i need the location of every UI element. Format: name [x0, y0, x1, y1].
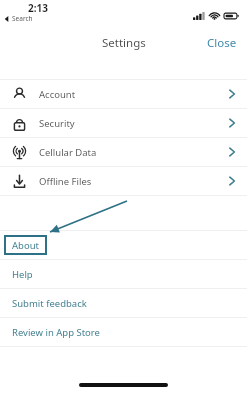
- staticText: Review in App Store: [12, 326, 100, 339]
- button[interactable]: About: [0, 231, 247, 259]
- staticText: Submit feedback: [12, 297, 87, 310]
- staticText: Offline Files: [39, 175, 92, 188]
- staticText: Cellular Data: [39, 146, 97, 159]
- button[interactable]: Account: [0, 80, 247, 108]
- button[interactable]: Submit feedback: [0, 289, 247, 317]
- staticText: Account: [39, 88, 76, 101]
- staticText: Security: [39, 117, 75, 130]
- staticText: Help: [12, 268, 33, 281]
- button[interactable]: Back to Search: [4, 14, 33, 23]
- button[interactable]: Close: [197, 31, 247, 55]
- staticText: Close: [207, 35, 237, 51]
- button[interactable]: Offline Files: [0, 167, 247, 195]
- button[interactable]: Security: [0, 109, 247, 137]
- staticText: Search: [12, 14, 33, 23]
- button[interactable]: Help: [0, 260, 247, 288]
- staticText: About: [12, 239, 39, 252]
- button[interactable]: Review in App Store: [0, 318, 247, 346]
- staticText: Settings: [102, 35, 146, 51]
- button[interactable]: Cellular Data: [0, 138, 247, 166]
- staticText: 2:13: [28, 1, 48, 15]
